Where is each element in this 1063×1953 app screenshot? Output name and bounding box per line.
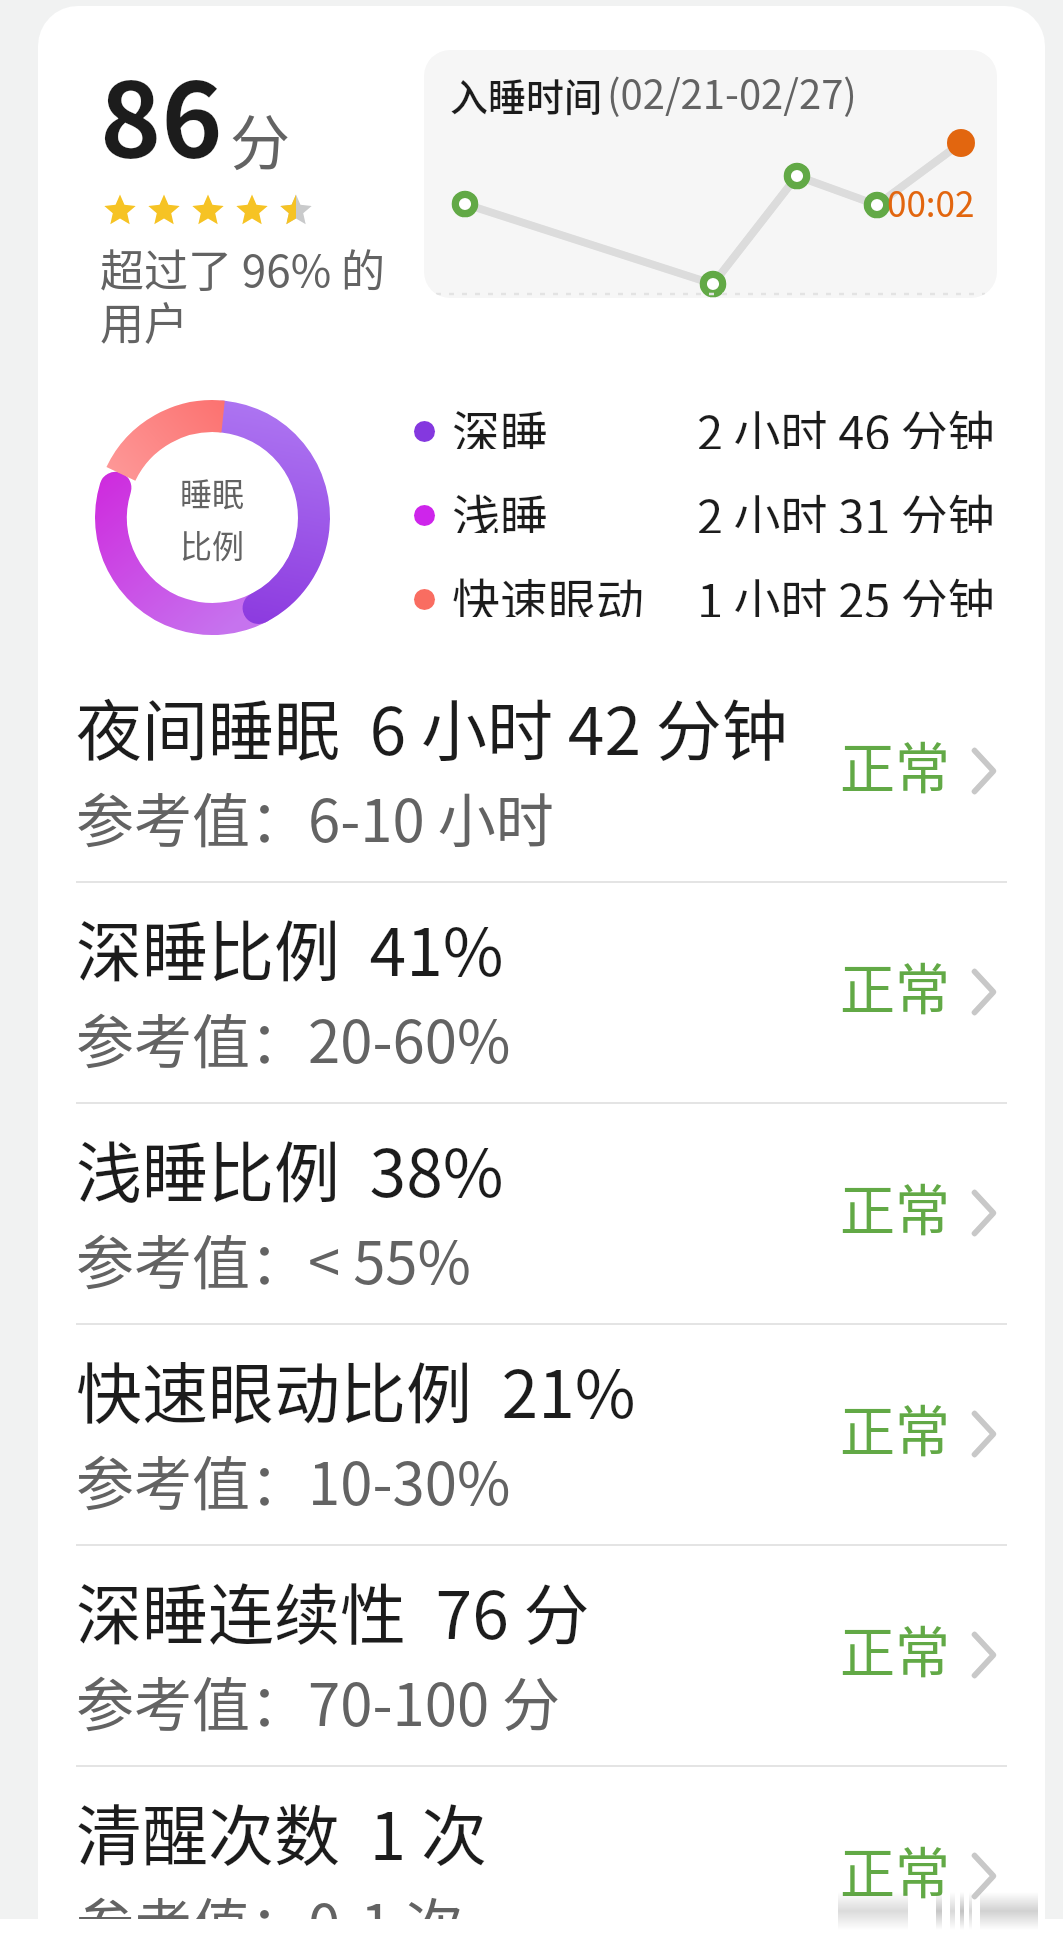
button[interactable]: 夜间睡眠 6 小时 42 分钟 <box>38 673 1045 894</box>
staticText: 2 小时 31 分钟 <box>697 479 995 533</box>
staticText: 1 小时 25 分钟 <box>697 563 995 617</box>
other: 查看详情 <box>971 747 997 795</box>
staticText: 00:02 <box>887 176 975 227</box>
staticText: 深睡比例 41% <box>76 899 504 995</box>
staticText: 分 <box>230 95 290 182</box>
button[interactable]: 浅睡比例 38% <box>38 1115 1045 1336</box>
staticText: 比例 <box>180 521 245 567</box>
staticText: 86 <box>100 37 223 188</box>
staticText: 参考值：0-1 次 <box>76 1880 464 1919</box>
staticText: 参考值：70-100 分 <box>76 1659 561 1743</box>
button[interactable]: 深睡比例 41% <box>38 894 1045 1115</box>
staticText: 参考值：6-10 小时 <box>76 775 554 859</box>
staticText: 睡眠 <box>180 469 245 515</box>
staticText: 正常 <box>840 1829 951 1909</box>
staticText: 2 小时 46 分钟 <box>697 395 995 449</box>
button[interactable]: 快速眼动比例 21% <box>38 1336 1045 1557</box>
other: 查看详情 <box>971 1631 997 1679</box>
staticText: 参考值：< 55% <box>76 1217 471 1301</box>
staticText: 清醒次数 1 次 <box>76 1783 487 1879</box>
other: 查看详情 <box>971 1410 997 1458</box>
other: 查看详情 <box>971 1189 997 1237</box>
button[interactable]: 清醒次数 1 次 <box>38 1778 1045 1919</box>
other: 查看详情 <box>971 1852 997 1900</box>
staticText: (02/21-02/27) <box>607 63 857 121</box>
staticText: 浅睡比例 38% <box>76 1120 504 1216</box>
staticText: 正常 <box>840 945 951 1025</box>
other: 查看详情 <box>971 968 997 1016</box>
staticText: 正常 <box>840 1166 951 1246</box>
staticText: 深睡连续性 76 分 <box>76 1562 590 1658</box>
staticText: 正常 <box>840 1387 951 1467</box>
staticText: 超过了 96% 的用户 <box>100 236 400 353</box>
staticText: 参考值：20-60% <box>76 996 511 1080</box>
staticText: 入睡时间 <box>450 67 603 122</box>
button[interactable]: 深睡连续性 76 分 <box>38 1557 1045 1778</box>
staticText: 夜间睡眠 6 小时 42 分钟 <box>76 678 788 774</box>
staticText: 快速眼动比例 21% <box>76 1341 636 1437</box>
staticText: 正常 <box>840 1608 951 1688</box>
button[interactable]: 入睡时间趋势图 02/21-02/27 <box>424 50 997 298</box>
staticText: 浅睡 <box>452 479 549 533</box>
staticText: 深睡 <box>452 395 549 449</box>
staticText: 快速眼动 <box>452 563 645 617</box>
staticText: 参考值：10-30% <box>76 1438 511 1522</box>
staticText: 正常 <box>840 724 951 804</box>
